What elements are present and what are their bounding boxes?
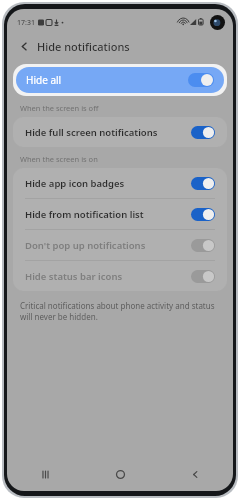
staticText: Hide full screen notifications: [25, 126, 158, 139]
staticText: Hide notifications: [37, 39, 130, 54]
button[interactable]: Back: [16, 38, 32, 54]
staticText: Hide from notification list: [25, 208, 144, 221]
button[interactable]: Home: [83, 459, 158, 489]
button[interactable]: Hide full screen notifications: [13, 117, 227, 147]
staticText: Hide all: [26, 73, 62, 87]
button[interactable]: Don't pop up notifications: [13, 230, 227, 260]
staticText: Don't pop up notifications: [25, 239, 146, 252]
staticText: Hide app icon badges: [25, 177, 125, 190]
button[interactable]: Hide from notification list: [13, 199, 227, 229]
button[interactable]: Back: [158, 459, 233, 489]
staticText: Critical notifications about phone activ…: [20, 300, 220, 322]
staticText: When the screen is off: [20, 103, 99, 113]
staticText: When the screen is on: [20, 154, 98, 164]
button[interactable]: Hide status bar icons: [13, 261, 227, 291]
staticText: 17:31: [17, 18, 35, 28]
button[interactable]: Hide app icon badges: [13, 168, 227, 198]
staticText: Hide status bar icons: [25, 270, 123, 283]
button[interactable]: Recents: [7, 459, 83, 489]
button[interactable]: Hide all: [16, 67, 224, 93]
